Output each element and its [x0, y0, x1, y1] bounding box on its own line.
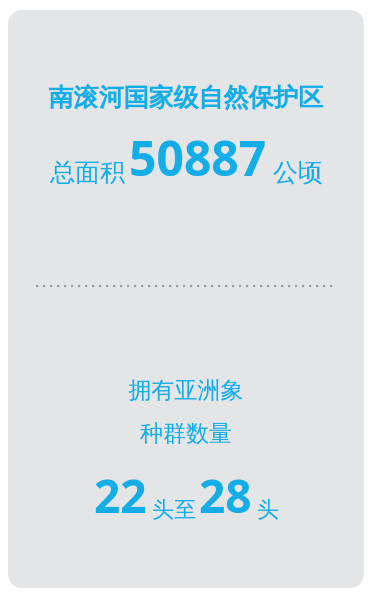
staticText: 头 — [257, 496, 279, 524]
button[interactable]: 南滚河国家级自然保护区 — [8, 10, 364, 588]
staticText: 28 — [199, 464, 252, 527]
staticText: 公顷 — [273, 157, 323, 188]
staticText: 种群数量 — [8, 419, 364, 448]
staticText: 50887 — [129, 125, 267, 190]
staticText: 南滚河国家级自然保护区 — [8, 82, 364, 113]
staticText: 总面积 — [50, 157, 125, 188]
staticText: 头至 — [152, 496, 196, 524]
staticText: 拥有亚洲象 — [8, 376, 364, 405]
staticText: 22 — [94, 464, 147, 527]
